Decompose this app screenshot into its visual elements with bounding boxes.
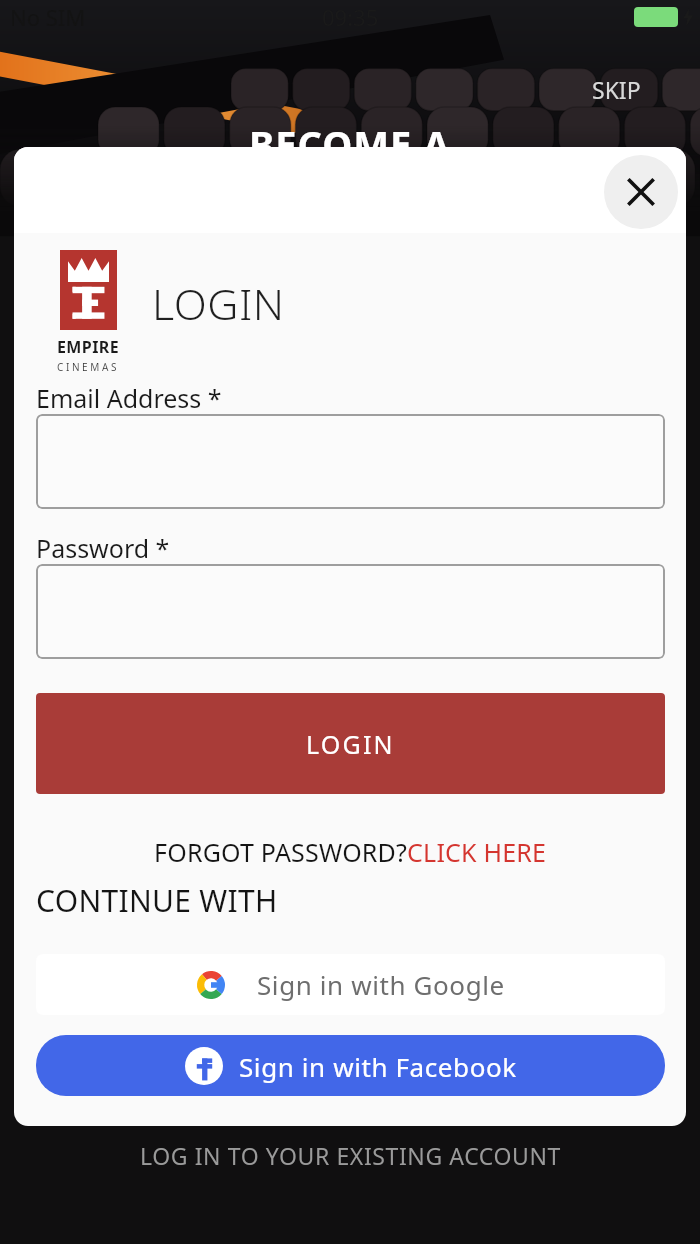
staticText: Sign in with Google	[257, 967, 505, 1002]
button[interactable]: Sign in with Facebook	[36, 1035, 665, 1096]
button[interactable]: Close	[604, 155, 678, 229]
button[interactable]: FORGOT PASSWORD?CLICK HERE	[14, 830, 686, 874]
staticText: CINEMAS	[57, 360, 120, 374]
staticText: Email Address *	[36, 381, 222, 415]
button[interactable]	[36, 414, 665, 509]
button[interactable]	[36, 564, 665, 659]
button[interactable]: SKIP	[580, 68, 653, 111]
staticText: Password *	[36, 531, 170, 565]
staticText: LOG IN TO YOUR EXISTING ACCOUNT	[140, 1140, 561, 1171]
staticText: Sign in with Facebook	[239, 1049, 517, 1084]
staticText: FORGOT PASSWORD?CLICK HERE	[154, 835, 547, 869]
staticText: SKIP	[592, 74, 641, 105]
button[interactable]: LOGIN	[36, 693, 665, 794]
staticText: CONTINUE WITH	[36, 880, 278, 921]
staticText: BECOME A	[249, 118, 451, 170]
staticText: EMPIRE	[57, 336, 120, 358]
button[interactable]: Sign in with Google	[36, 954, 665, 1015]
staticText: LOGIN	[306, 727, 395, 761]
staticText: LOGIN	[152, 274, 285, 333]
